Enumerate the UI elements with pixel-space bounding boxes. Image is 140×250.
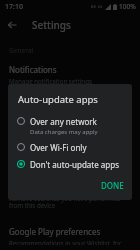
staticText: Notifications bbox=[9, 64, 57, 75]
staticText: Clear local search history bbox=[9, 181, 103, 192]
button[interactable]: Google Play preferences bbox=[0, 221, 140, 250]
button[interactable]: DONE bbox=[93, 177, 132, 194]
staticText: General bbox=[9, 46, 140, 55]
button[interactable]: Over any network bbox=[8, 113, 132, 139]
button[interactable]: Clear local search history bbox=[0, 176, 140, 215]
staticText: Manage notification settings bbox=[9, 77, 92, 85]
staticText: Remove searches you have performed from … bbox=[9, 194, 131, 210]
staticText: Over Wi-Fi only bbox=[30, 142, 87, 153]
button[interactable]: Over Wi-Fi only bbox=[8, 139, 132, 156]
button[interactable]: Back bbox=[0, 13, 24, 37]
staticText: Google Play preferences bbox=[9, 226, 101, 237]
staticText: Over any network bbox=[30, 116, 97, 127]
staticText: 100% bbox=[119, 2, 136, 11]
staticText: 17:10 bbox=[5, 2, 23, 12]
button[interactable]: Don't auto-update apps bbox=[8, 156, 132, 173]
button[interactable]: Notifications bbox=[0, 59, 140, 90]
staticText: Data charges may apply bbox=[30, 128, 98, 136]
staticText: Settings bbox=[32, 18, 71, 32]
staticText: DONE bbox=[101, 180, 124, 191]
staticText: Auto-update apps bbox=[18, 93, 98, 106]
staticText: Recommendations in your Wishlist, for be… bbox=[9, 239, 131, 245]
staticText: Don't auto-update apps bbox=[30, 159, 119, 170]
